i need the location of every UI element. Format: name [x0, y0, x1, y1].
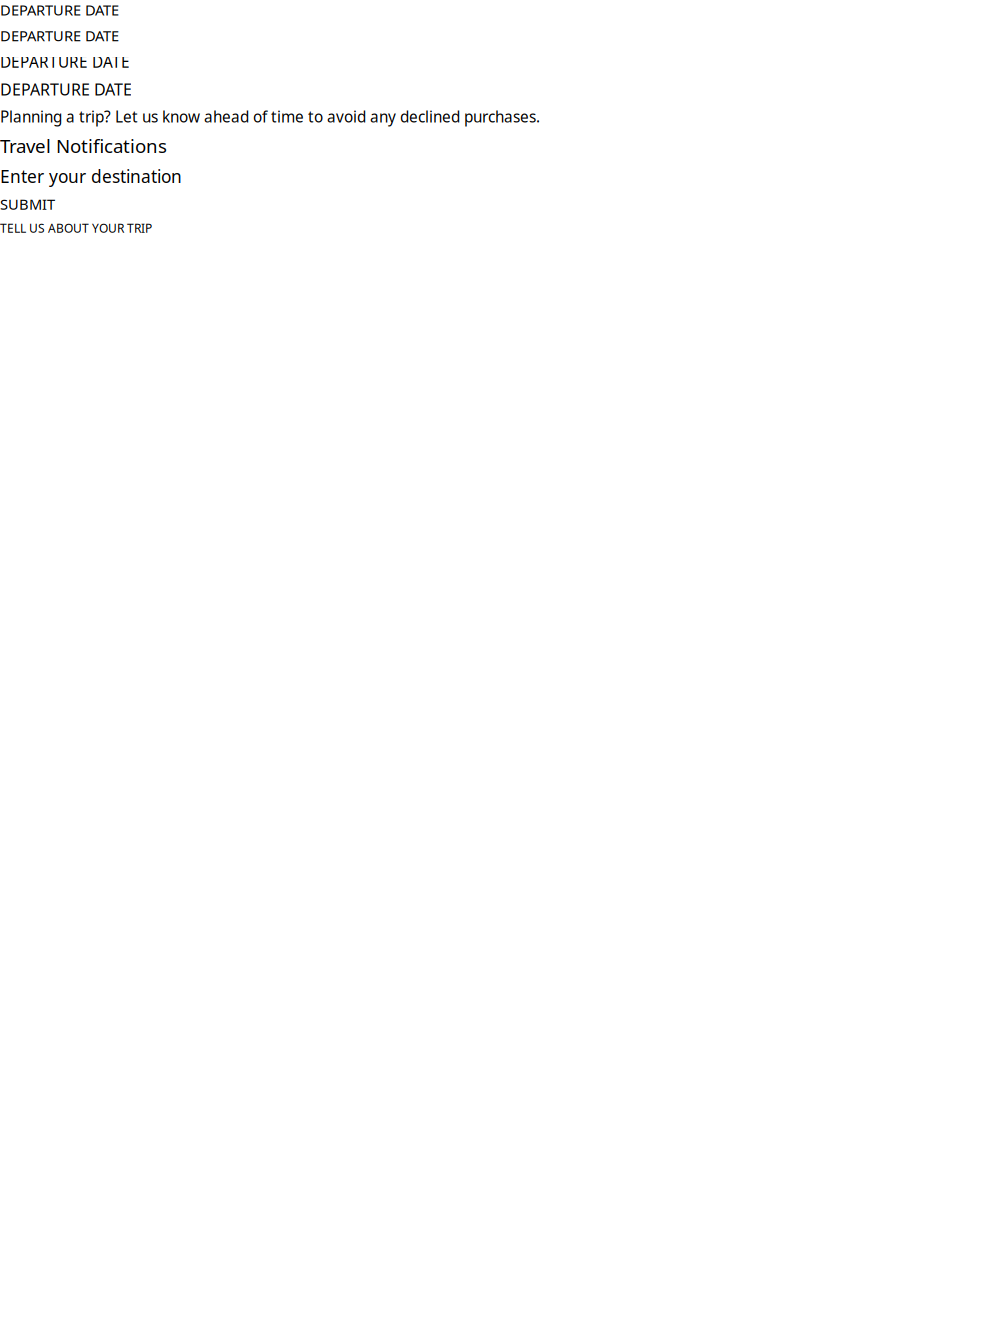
staticText: TELL US ABOUT YOUR TRIP: [0, 220, 152, 236]
staticText: DEPARTURE DATE: [0, 78, 132, 100]
staticText: Travel Notifications: [0, 133, 167, 158]
staticText: Enter your destination: [0, 164, 182, 188]
staticText: DEPARTURE DATE: [0, 51, 130, 72]
staticText: Planning a trip? Let us know ahead of ti…: [0, 106, 540, 127]
staticText: SUBMIT: [0, 194, 55, 214]
staticText: DEPARTURE DATE: [0, 25, 119, 45]
staticText: DEPARTURE DATE: [0, 0, 119, 19]
